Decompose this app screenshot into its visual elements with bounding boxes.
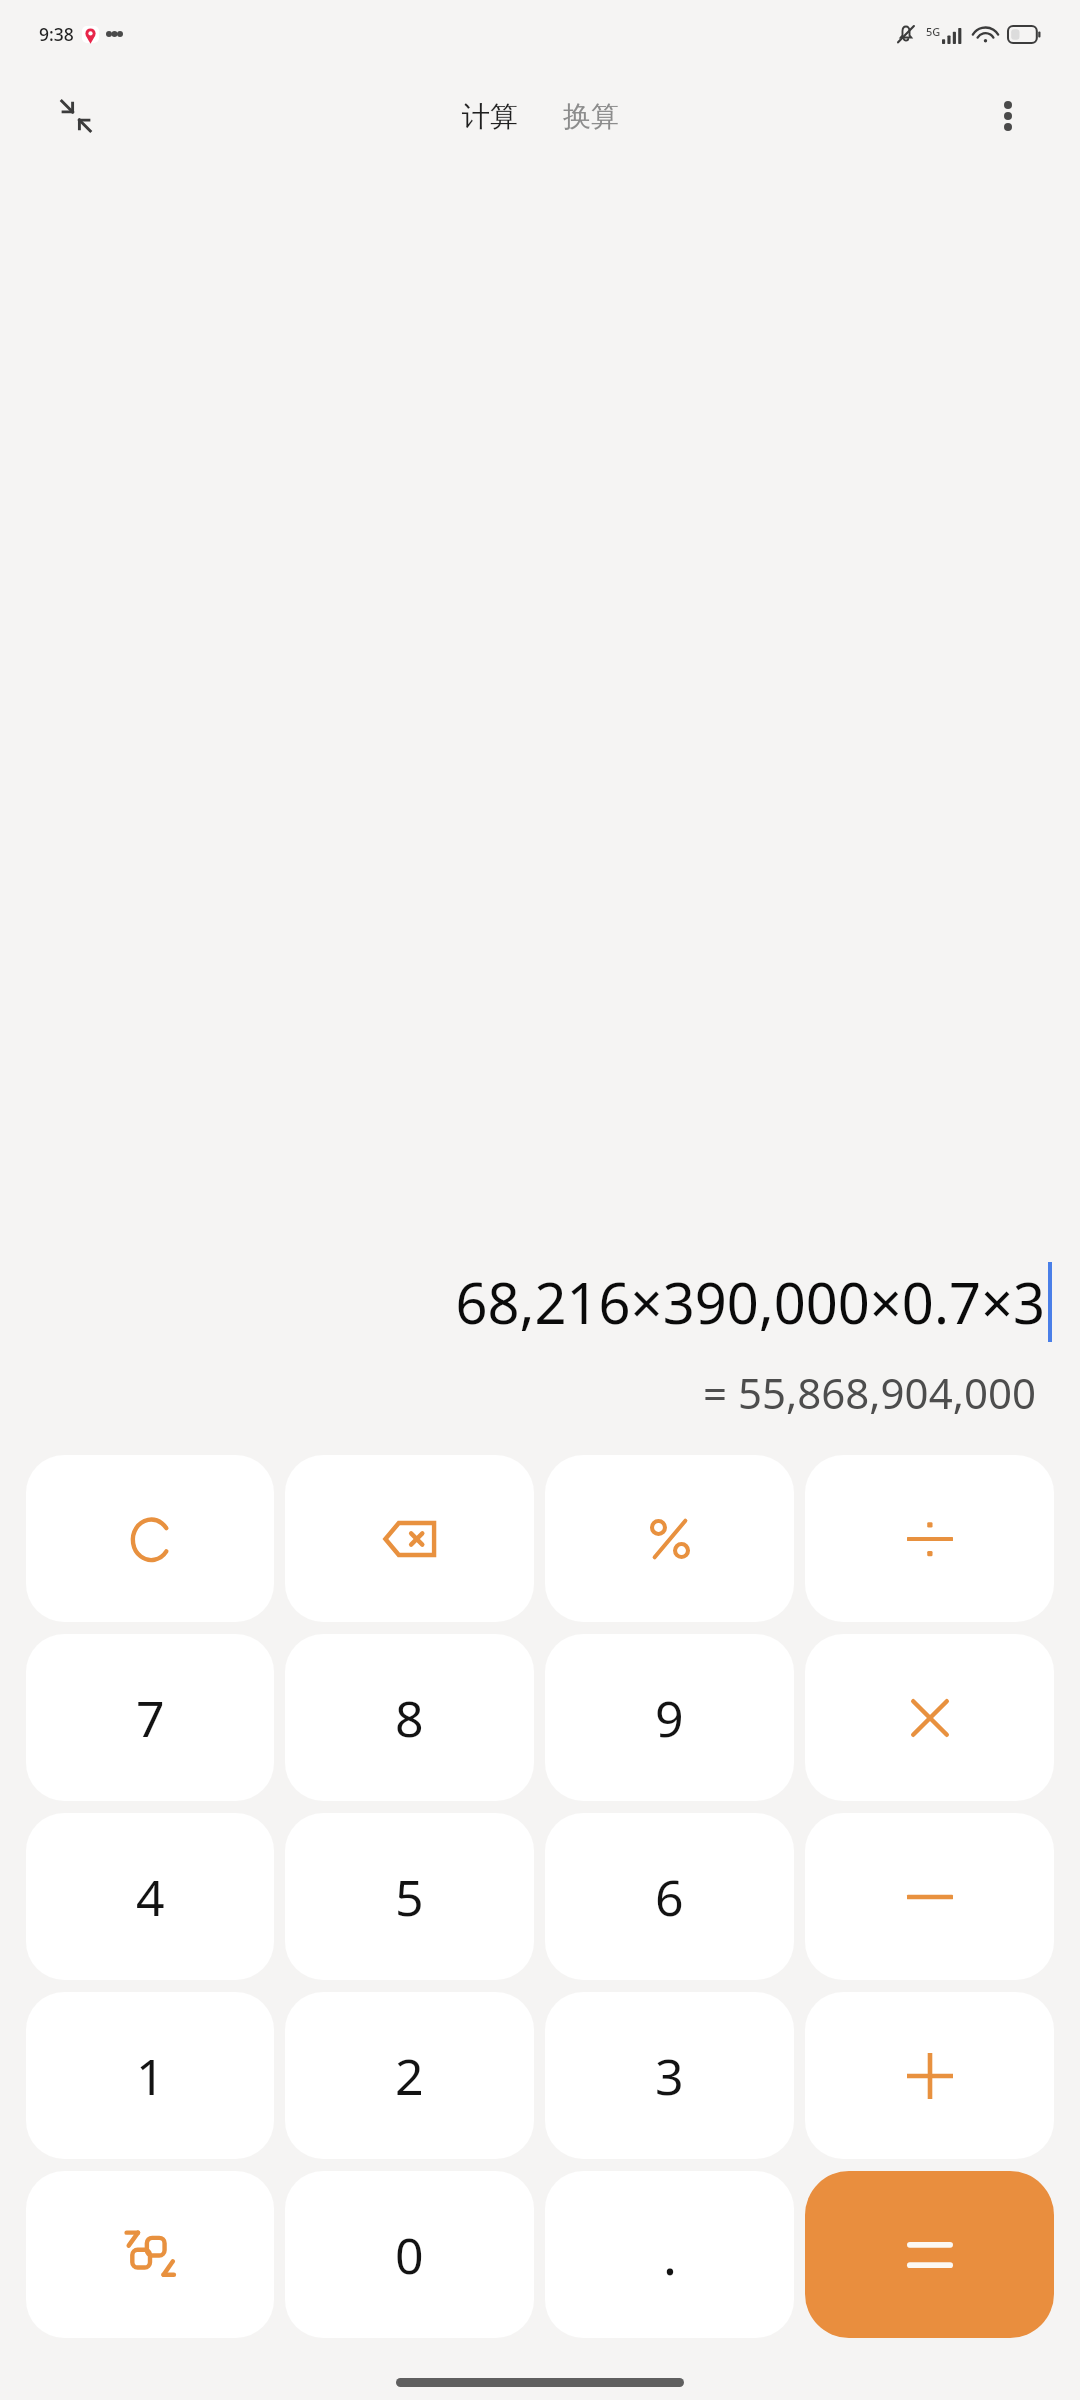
button[interactable]: Collapse bbox=[48, 88, 104, 144]
button[interactable]: More options bbox=[980, 88, 1036, 144]
staticText: 5G bbox=[926, 24, 941, 39]
staticText: 0 bbox=[395, 2221, 424, 2289]
staticText: 2 bbox=[395, 2042, 424, 2110]
button[interactable]: 7 bbox=[26, 1634, 274, 1801]
staticText: 9 bbox=[655, 1684, 684, 1752]
staticText: 5 bbox=[395, 1863, 424, 1931]
staticText: 6 bbox=[655, 1863, 684, 1931]
button[interactable]: Equals bbox=[805, 2171, 1054, 2338]
staticText: 7 bbox=[136, 1684, 165, 1752]
staticText: 3 bbox=[655, 2042, 684, 2110]
staticText: 4 bbox=[136, 1863, 165, 1931]
button[interactable]: 5 bbox=[285, 1813, 534, 1980]
button[interactable]: 计算 bbox=[456, 93, 524, 140]
staticText: 9:38 bbox=[39, 22, 74, 46]
staticText: 1 bbox=[136, 2042, 165, 2110]
button[interactable]: Scientific functions bbox=[26, 2171, 274, 2338]
button[interactable]: 2 bbox=[285, 1992, 534, 2159]
staticText: 换算 bbox=[563, 99, 619, 134]
staticText: . bbox=[663, 2219, 677, 2290]
staticText: 8 bbox=[395, 1684, 424, 1752]
button[interactable]: Minus bbox=[805, 1813, 1054, 1980]
button[interactable]: Multiply bbox=[805, 1634, 1054, 1801]
button[interactable]: 1 bbox=[26, 1992, 274, 2159]
staticText: 68,216×390,000×0.7×3 bbox=[455, 1264, 1045, 1340]
button[interactable]: Divide bbox=[805, 1455, 1054, 1622]
button[interactable]: Plus bbox=[805, 1992, 1054, 2159]
button[interactable]: 9 bbox=[545, 1634, 794, 1801]
button[interactable]: Backspace bbox=[285, 1455, 534, 1622]
button[interactable]: 6 bbox=[545, 1813, 794, 1980]
button[interactable]: 3 bbox=[545, 1992, 794, 2159]
button[interactable]: Clear bbox=[26, 1455, 274, 1622]
button[interactable]: 8 bbox=[285, 1634, 534, 1801]
button[interactable]: Percent bbox=[545, 1455, 794, 1622]
staticText: 计算 bbox=[462, 99, 518, 134]
staticText: = 55,868,904,000 bbox=[0, 1364, 1036, 1421]
button[interactable]: . bbox=[545, 2171, 794, 2338]
button[interactable]: 换算 bbox=[557, 93, 625, 140]
button[interactable]: 4 bbox=[26, 1813, 274, 1980]
button[interactable]: 0 bbox=[285, 2171, 534, 2338]
